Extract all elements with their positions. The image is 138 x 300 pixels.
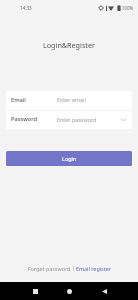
staticText: Email	[11, 96, 57, 104]
button[interactable]: Login	[6, 151, 132, 166]
staticText: 14:33	[20, 5, 32, 11]
staticText: Enter password	[57, 116, 121, 123]
staticText: Enter email	[57, 96, 127, 103]
staticText: Login	[62, 155, 77, 162]
button[interactable]: Home	[57, 282, 81, 300]
staticText: 100%	[122, 5, 134, 11]
button[interactable]: Back	[92, 282, 116, 300]
button[interactable]: Forget password	[28, 265, 71, 272]
staticText: Login&Register	[43, 40, 95, 50]
staticText: Email register	[76, 265, 111, 272]
button[interactable]: Recent apps	[23, 282, 47, 300]
button[interactable]: Email register	[76, 265, 111, 272]
staticText: Password	[11, 115, 57, 123]
staticText: Forget password	[28, 265, 71, 272]
